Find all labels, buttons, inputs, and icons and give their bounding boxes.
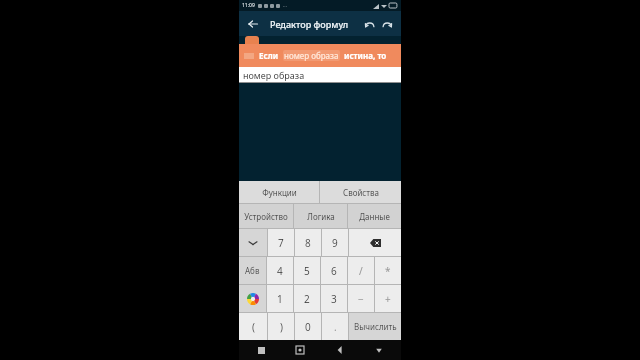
staticText: / — [359, 264, 363, 278]
staticText: 1 — [277, 292, 283, 306]
staticText: 5 — [304, 264, 310, 278]
staticText: 11:09 — [242, 2, 255, 9]
staticText: номер образа — [243, 69, 305, 81]
button[interactable]: ( — [239, 313, 267, 340]
button[interactable]: Устройство — [239, 204, 293, 228]
button[interactable]: Redo — [378, 15, 396, 33]
staticText: ( — [252, 320, 255, 334]
staticText: − — [358, 292, 364, 306]
button[interactable]: / — [348, 257, 374, 284]
staticText: 4 — [277, 264, 283, 278]
button[interactable]: 7 — [268, 229, 294, 256]
button[interactable]: 9 — [322, 229, 348, 256]
staticText: истина, то — [344, 50, 387, 61]
button[interactable]: Home — [292, 342, 308, 358]
button[interactable]: Recents — [253, 342, 269, 358]
staticText: 8 — [305, 236, 311, 250]
button[interactable]: Абв — [239, 257, 266, 284]
button[interactable]: Если — [239, 44, 401, 67]
button[interactable]: 4 — [267, 257, 293, 284]
button[interactable]: * — [375, 257, 401, 284]
button[interactable]: 6 — [321, 257, 347, 284]
button[interactable]: Backspace — [349, 229, 401, 256]
button[interactable]: Undo — [360, 15, 378, 33]
staticText: Данные — [359, 211, 390, 222]
button[interactable]: 5 — [294, 257, 320, 284]
button[interactable]: Collapse — [239, 229, 267, 256]
button[interactable]: ) — [268, 313, 294, 340]
staticText: 3 — [331, 292, 337, 306]
button[interactable]: 8 — [295, 229, 321, 256]
button[interactable]: Hide keyboard — [371, 342, 387, 358]
button[interactable]: + — [375, 285, 401, 312]
button[interactable]: Свойства — [320, 181, 401, 203]
button[interactable]: 1 — [267, 285, 293, 312]
button[interactable]: 2 — [294, 285, 320, 312]
staticText: Если — [259, 50, 279, 61]
staticText: ) — [280, 320, 283, 334]
button[interactable]: Данные — [348, 204, 401, 228]
staticText: ... — [283, 2, 288, 9]
staticText: Устройство — [244, 211, 288, 222]
button[interactable]: Функции — [239, 181, 319, 203]
button[interactable]: Логика — [294, 204, 347, 228]
staticText: . — [334, 320, 337, 334]
button[interactable]: Back — [332, 342, 348, 358]
staticText: Функции — [262, 187, 297, 198]
button[interactable]: Colour — [239, 285, 266, 312]
staticText: 0 — [305, 320, 311, 334]
staticText: номер образа — [284, 50, 339, 61]
staticText: Вычислить — [354, 321, 397, 332]
staticText: Свойства — [343, 187, 379, 198]
staticText: 6 — [331, 264, 337, 278]
staticText: Абв — [245, 265, 260, 276]
button[interactable]: Вычислить — [349, 313, 401, 340]
button[interactable]: номер образа — [239, 67, 401, 82]
staticText: Редактор формул — [270, 18, 349, 30]
staticText: 2 — [304, 292, 310, 306]
staticText: * — [385, 264, 391, 278]
button[interactable]: Back — [244, 15, 262, 33]
staticText: 9 — [332, 236, 338, 250]
button[interactable]: 0 — [295, 313, 321, 340]
button[interactable]: 3 — [321, 285, 347, 312]
staticText: 7 — [278, 236, 284, 250]
staticText: Логика — [307, 211, 335, 222]
button[interactable]: − — [348, 285, 374, 312]
staticText: + — [385, 292, 391, 306]
